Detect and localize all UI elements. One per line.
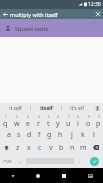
staticText: 7 bbox=[68, 115, 70, 119]
button[interactable]: Square roots bbox=[0, 19, 103, 37]
button[interactable]: Clear bbox=[92, 9, 103, 19]
button[interactable]: s bbox=[14, 128, 24, 141]
button[interactable]: Back bbox=[0, 9, 10, 19]
button[interactable]: Voice input bbox=[92, 103, 103, 114]
staticText: 5 bbox=[48, 115, 50, 119]
button[interactable]: Home bbox=[25, 168, 51, 183]
button[interactable]: v bbox=[45, 141, 56, 154]
staticText: q bbox=[3, 119, 8, 128]
button[interactable]: it's elf bbox=[62, 103, 92, 114]
staticText: w bbox=[14, 119, 20, 128]
button[interactable]: f bbox=[34, 128, 44, 141]
button[interactable]: 2 bbox=[11, 115, 22, 128]
button[interactable]: Shift bbox=[0, 141, 13, 154]
staticText: e bbox=[26, 119, 30, 128]
staticText: 0 bbox=[98, 115, 100, 119]
button[interactable]: z bbox=[13, 141, 23, 154]
button[interactable]: Enter bbox=[90, 157, 99, 166]
staticText: itself bbox=[45, 11, 58, 18]
staticText: r bbox=[37, 119, 40, 128]
staticText: b bbox=[59, 143, 64, 153]
button[interactable]: Backspace bbox=[89, 141, 103, 154]
button[interactable]: b bbox=[56, 141, 67, 154]
staticText: p bbox=[96, 119, 101, 128]
button[interactable]: Hide keyboard bbox=[77, 168, 103, 183]
button[interactable]: j bbox=[66, 128, 77, 141]
button[interactable]: . bbox=[75, 154, 85, 168]
staticText: s bbox=[17, 130, 21, 140]
staticText: n bbox=[70, 143, 75, 153]
staticText: ?123 bbox=[3, 159, 12, 164]
button[interactable]: 3 bbox=[22, 115, 33, 128]
button[interactable]: 7 bbox=[63, 115, 73, 128]
button[interactable]: it self bbox=[0, 103, 30, 114]
staticText: 2 bbox=[16, 115, 18, 119]
button[interactable]: 6 bbox=[53, 115, 63, 128]
staticText: t bbox=[47, 119, 50, 128]
button[interactable]: 9 bbox=[83, 115, 93, 128]
button[interactable]: c bbox=[34, 141, 45, 154]
button[interactable]: Back bbox=[0, 168, 25, 183]
button[interactable]: h bbox=[55, 128, 66, 141]
button[interactable]: x bbox=[23, 141, 34, 154]
staticText: multiply with bbox=[10, 11, 45, 18]
staticText: v bbox=[49, 143, 53, 153]
staticText: c bbox=[38, 143, 42, 153]
staticText: 3 bbox=[27, 115, 29, 119]
staticText: 9 bbox=[88, 115, 90, 119]
button[interactable]: 4 bbox=[33, 115, 43, 128]
staticText: i bbox=[77, 119, 79, 128]
staticText: 1 bbox=[5, 115, 7, 119]
staticText: z bbox=[16, 143, 20, 153]
button[interactable]: a bbox=[4, 128, 14, 141]
button[interactable]: Recents bbox=[51, 168, 77, 183]
staticText: l bbox=[93, 130, 95, 140]
staticText: itself bbox=[40, 105, 53, 112]
staticText: h bbox=[58, 130, 63, 140]
button[interactable]: ?123 bbox=[0, 154, 15, 168]
button[interactable]: k bbox=[77, 128, 88, 141]
staticText: 12:36 bbox=[88, 1, 101, 8]
staticText: d bbox=[27, 130, 32, 140]
staticText: o bbox=[86, 119, 91, 128]
staticText: . bbox=[79, 157, 81, 165]
button[interactable]: l bbox=[88, 128, 99, 141]
staticText: u bbox=[66, 119, 71, 128]
staticText: y bbox=[56, 119, 60, 128]
button[interactable]: n bbox=[67, 141, 78, 154]
staticText: g bbox=[47, 130, 52, 140]
staticText: 8 bbox=[77, 115, 79, 119]
staticText: j bbox=[71, 130, 73, 140]
staticText: k bbox=[81, 130, 85, 140]
staticText: 6 bbox=[57, 115, 59, 119]
button[interactable]: itself bbox=[31, 103, 61, 114]
staticText: it self bbox=[9, 105, 22, 112]
button[interactable]: g bbox=[44, 128, 55, 141]
staticText: Square roots bbox=[15, 25, 49, 32]
staticText: m bbox=[80, 143, 87, 153]
button[interactable]: 5 bbox=[43, 115, 53, 128]
staticText: , bbox=[19, 157, 21, 165]
staticText: it's elf bbox=[70, 105, 84, 112]
button[interactable]: multiply with bbox=[10, 9, 92, 19]
button[interactable]: m bbox=[78, 141, 89, 154]
staticText: f bbox=[38, 130, 41, 140]
staticText: 4 bbox=[38, 115, 40, 119]
button[interactable]: 0 bbox=[93, 115, 103, 128]
button[interactable]: d bbox=[24, 128, 34, 141]
button[interactable]: 1 bbox=[0, 115, 11, 128]
staticText: x bbox=[27, 143, 31, 153]
staticText: a bbox=[7, 130, 11, 140]
button[interactable]: , bbox=[15, 154, 25, 168]
button[interactable]: 8 bbox=[73, 115, 83, 128]
